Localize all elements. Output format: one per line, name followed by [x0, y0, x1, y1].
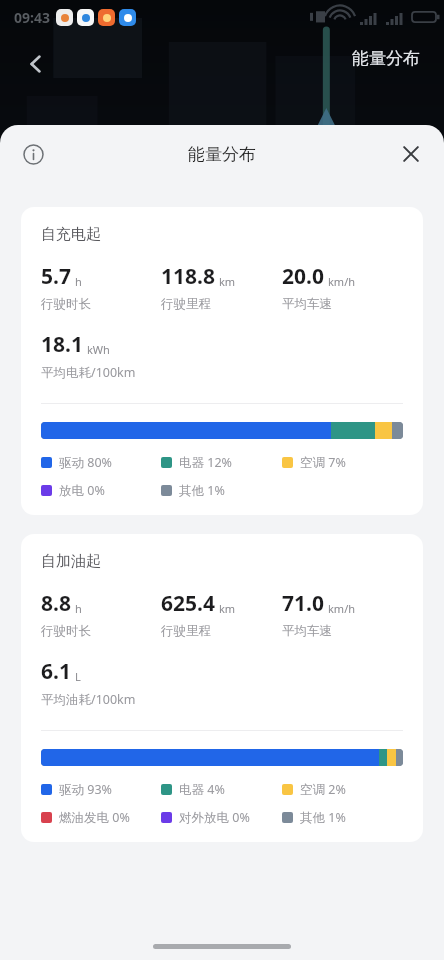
staticText: 平均电耗/100km: [41, 364, 136, 381]
staticText: km/h: [328, 274, 356, 289]
staticText: 驱动 93%: [59, 781, 112, 798]
staticText: 燃油发电 0%: [59, 809, 130, 826]
staticText: 118.8: [161, 262, 215, 291]
staticText: 8.8: [41, 589, 71, 618]
staticText: 行驶里程: [161, 296, 211, 312]
staticText: 能量分布: [188, 144, 256, 165]
button[interactable]: Close: [390, 133, 432, 175]
staticText: 20.0: [282, 262, 324, 291]
staticText: 自加油起: [41, 552, 101, 571]
staticText: 平均车速: [282, 623, 332, 639]
staticText: 能量分布: [352, 48, 420, 69]
staticText: h: [75, 601, 82, 616]
staticText: 6.1: [41, 657, 71, 686]
staticText: 电器 12%: [179, 454, 232, 471]
staticText: 其他 1%: [300, 809, 346, 826]
staticText: 电器 4%: [179, 781, 225, 798]
staticText: 平均车速: [282, 296, 332, 312]
staticText: 对外放电 0%: [179, 809, 250, 826]
staticText: 行驶里程: [161, 623, 211, 639]
staticText: 625.4: [161, 589, 215, 618]
staticText: 行驶时长: [41, 296, 91, 312]
staticText: km: [219, 274, 236, 289]
button[interactable]: Back: [14, 42, 58, 86]
staticText: 平均油耗/100km: [41, 691, 136, 708]
staticText: 09:43: [14, 8, 50, 27]
staticText: 自充电起: [41, 225, 101, 244]
button[interactable]: 自充电起: [21, 207, 423, 515]
staticText: 5.7: [41, 262, 71, 291]
staticText: kWh: [87, 342, 110, 357]
staticText: 空调 2%: [300, 781, 346, 798]
staticText: km/h: [328, 601, 356, 616]
button[interactable]: 自加油起: [21, 534, 423, 842]
staticText: 其他 1%: [179, 482, 225, 499]
staticText: L: [75, 669, 81, 684]
staticText: 行驶时长: [41, 623, 91, 639]
staticText: km: [219, 601, 236, 616]
staticText: 71.0: [282, 589, 324, 618]
button[interactable]: Information: [12, 133, 54, 175]
staticText: 驱动 80%: [59, 454, 112, 471]
staticText: h: [75, 274, 82, 289]
staticText: 放电 0%: [59, 482, 105, 499]
staticText: 空调 7%: [300, 454, 346, 471]
staticText: 18.1: [41, 330, 83, 359]
